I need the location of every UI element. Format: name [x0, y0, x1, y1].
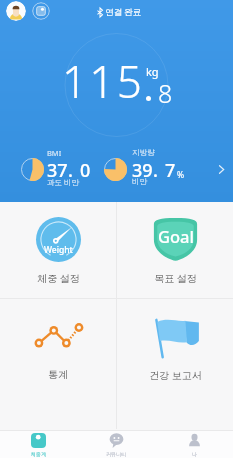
- staticText: 115: [62, 51, 144, 111]
- staticText: 0: [80, 158, 91, 183]
- staticText: 지방량: [132, 148, 155, 157]
- button[interactable]: BMI: [0, 146, 233, 192]
- staticText: %: [177, 169, 185, 181]
- staticText: 나: [192, 451, 197, 457]
- staticText: 7: [165, 158, 176, 183]
- staticText: BMI: [47, 148, 62, 158]
- staticText: kg: [146, 64, 159, 79]
- staticText: 37: [47, 158, 68, 183]
- staticText: .: [68, 158, 73, 183]
- button[interactable]: 건강 보고서: [117, 299, 233, 429]
- button[interactable]: 체중계: [0, 431, 77, 458]
- staticText: 통계: [48, 368, 68, 381]
- staticText: .: [153, 158, 158, 183]
- button[interactable]: Device: [32, 2, 50, 20]
- staticText: Goal: [158, 225, 194, 247]
- button[interactable]: 나: [155, 431, 233, 458]
- staticText: 커뮤니티: [106, 451, 126, 457]
- staticText: 39: [132, 158, 153, 183]
- staticText: 8: [158, 76, 173, 110]
- staticText: 과도 비만: [47, 177, 79, 187]
- staticText: 목표 설정: [154, 271, 197, 285]
- staticText: 비만: [132, 177, 147, 186]
- button[interactable]: Weight: [0, 202, 116, 298]
- staticText: 체중계: [31, 451, 46, 457]
- staticText: 연결 완료: [105, 6, 142, 18]
- button[interactable]: Goal: [117, 202, 233, 298]
- button[interactable]: Profile: [6, 1, 26, 21]
- staticText: 건강 보고서: [149, 368, 202, 382]
- button[interactable]: 통계: [0, 299, 116, 429]
- staticText: 체중 설정: [37, 271, 80, 285]
- staticText: Weight: [44, 244, 73, 256]
- button[interactable]: 커뮤니티: [77, 431, 155, 458]
